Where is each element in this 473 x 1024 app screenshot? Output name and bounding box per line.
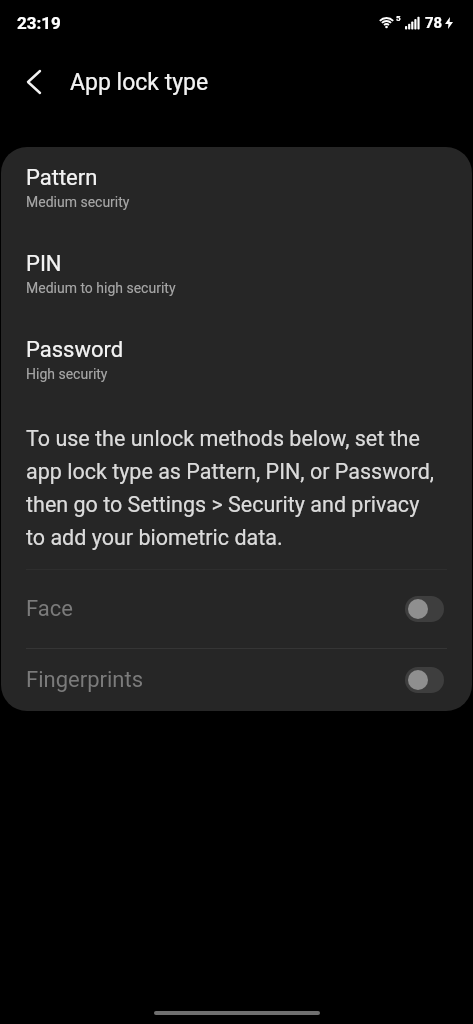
button[interactable]: PIN <box>1 233 472 319</box>
button[interactable] <box>13 65 55 99</box>
button[interactable]: Pattern <box>1 147 472 233</box>
staticText: 23:19 <box>17 13 61 33</box>
button[interactable]: Face <box>1 570 472 648</box>
button[interactable]: Password <box>1 319 472 405</box>
staticText: 78 <box>425 14 443 32</box>
staticText: Password <box>26 337 124 363</box>
staticText: Face <box>26 596 73 622</box>
staticText: High security <box>26 366 108 382</box>
staticText: Fingerprints <box>26 667 143 693</box>
staticText: To use the unlock methods below, set the… <box>26 426 435 550</box>
staticText: Medium security <box>26 194 130 210</box>
staticText: Medium to high security <box>26 280 176 296</box>
staticText: App lock type <box>70 69 209 96</box>
staticText: Pattern <box>26 165 98 191</box>
staticText: 5 <box>396 14 401 23</box>
staticText: PIN <box>26 251 62 277</box>
button[interactable]: Fingerprints <box>1 649 472 711</box>
